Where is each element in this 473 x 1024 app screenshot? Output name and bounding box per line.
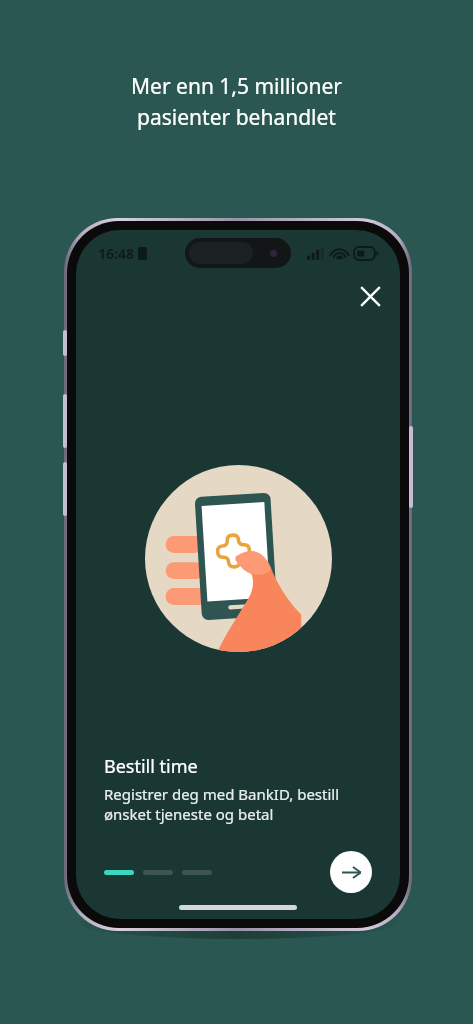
staticText: Mer enn 1,5 millioner pasienter behandle…: [131, 72, 342, 131]
staticText: Bestill time: [104, 754, 198, 779]
button[interactable]: Lukk: [348, 274, 392, 318]
button[interactable]: Neste: [330, 851, 372, 893]
staticText: 16:48: [98, 244, 134, 263]
button[interactable]: Side 3: [182, 870, 212, 875]
staticText: Registrer deg med BankID, bestill ønsket…: [104, 784, 340, 824]
button[interactable]: Side 2: [143, 870, 173, 875]
button[interactable]: Side 1: [104, 870, 134, 875]
